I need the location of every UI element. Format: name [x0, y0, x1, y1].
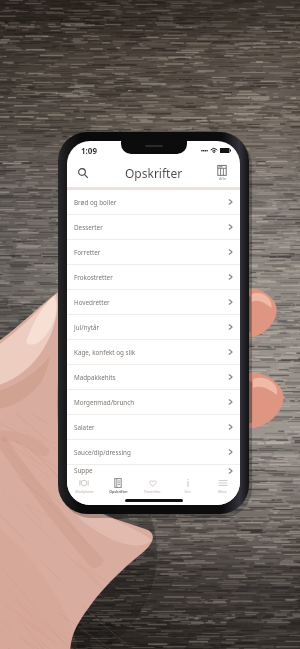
staticText: Brød og boller [74, 198, 228, 207]
button[interactable]: Salater [67, 415, 240, 439]
staticText: Frokostretter [74, 273, 228, 282]
staticText: Sauce/dip/dressing [74, 448, 228, 457]
button[interactable]: Mere [205, 476, 240, 496]
button[interactable]: Morgenmad/brunch [67, 390, 240, 414]
staticText: Suppe [74, 466, 228, 475]
button[interactable]: Madplaner [67, 476, 101, 496]
button[interactable]: Madpakkehits [67, 365, 240, 389]
staticText: Madplaner [75, 489, 94, 494]
staticText: 1:09 [81, 145, 97, 156]
button[interactable]: Hovedretter [67, 290, 240, 314]
button[interactable]: Favoritter [135, 476, 170, 496]
button[interactable]: Opskrifter [101, 476, 135, 496]
button[interactable]: Search [73, 163, 93, 183]
staticText: Alle [219, 176, 226, 181]
staticText: Jul/nytår [74, 323, 228, 332]
staticText: Desserter [74, 223, 228, 232]
staticText: Opskrifter [109, 489, 128, 494]
button[interactable]: Frokostretter [67, 265, 240, 289]
staticText: Opskrifter [125, 165, 183, 181]
staticText: Forretter [74, 248, 228, 257]
button[interactable]: Om [170, 476, 205, 496]
button[interactable]: Brød og boller [67, 190, 240, 214]
button[interactable]: Desserter [67, 215, 240, 239]
button[interactable]: Kage, konfekt og slik [67, 340, 240, 364]
staticText: Madpakkehits [74, 373, 228, 382]
staticText: Salater [74, 423, 228, 432]
button[interactable]: Filter [211, 165, 233, 181]
button[interactable]: Suppe [67, 465, 240, 476]
button[interactable]: Forretter [67, 240, 240, 264]
staticText: Mere [218, 489, 227, 494]
staticText: Hovedretter [74, 298, 228, 307]
staticText: Kage, konfekt og slik [74, 348, 228, 357]
staticText: Favoritter [144, 489, 161, 494]
button[interactable]: Sauce/dip/dressing [67, 440, 240, 464]
staticText: Morgenmad/brunch [74, 398, 228, 407]
staticText: Om [184, 489, 191, 494]
button[interactable]: Jul/nytår [67, 315, 240, 339]
